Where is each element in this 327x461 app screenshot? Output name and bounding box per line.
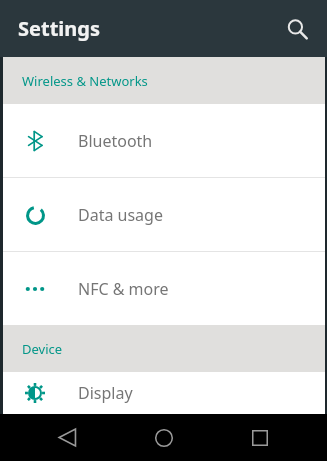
button[interactable]: Data usage [0,178,327,251]
button[interactable]: NFC & more [0,252,327,325]
staticText: Data usage [78,204,163,226]
staticText: Bluetooth [78,130,153,152]
staticText: Display [78,382,133,404]
button[interactable]: Recents [230,414,290,461]
button[interactable]: Search [275,7,319,51]
staticText: Wireless & Networks [22,72,148,90]
staticText: Device [22,340,63,358]
button[interactable]: Bluetooth [0,104,327,177]
staticText: Settings [18,15,100,42]
button[interactable]: Home [134,414,194,461]
button[interactable]: Display [0,372,327,414]
staticText: NFC & more [78,278,169,300]
button[interactable]: Back [37,414,97,461]
